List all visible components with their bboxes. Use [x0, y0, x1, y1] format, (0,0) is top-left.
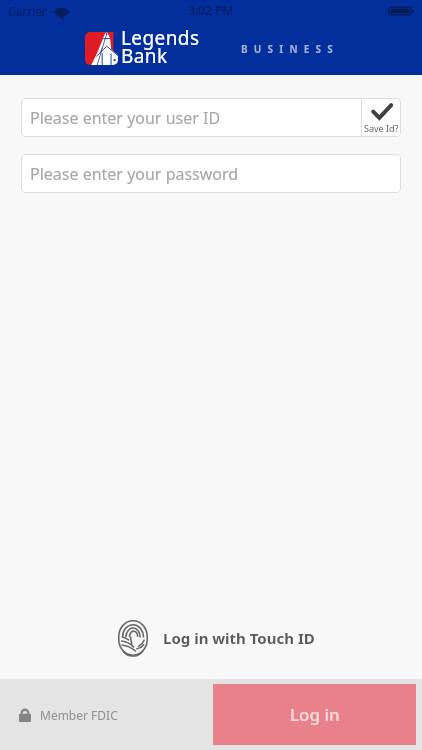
staticText: Member FDIC	[40, 707, 118, 723]
button[interactable]: Log in	[213, 684, 416, 745]
button[interactable]: Save Id	[362, 98, 401, 137]
staticText: Log in	[290, 703, 340, 726]
staticText: Please enter your password	[30, 163, 239, 185]
staticText: Save Id?	[364, 122, 399, 134]
staticText: Please enter your user ID	[30, 107, 221, 129]
button[interactable]: Log in with Touch ID	[5, 608, 422, 668]
staticText: Log in with Touch ID	[163, 628, 315, 648]
staticText: B U S I N E S S	[241, 42, 335, 56]
button[interactable]: Please enter your password	[21, 154, 401, 193]
staticText: 3:02 PM	[188, 2, 234, 18]
staticText: Bank	[121, 43, 168, 69]
button[interactable]: Please enter your user ID	[21, 98, 361, 137]
staticText: Carrier	[8, 3, 48, 19]
staticText: Legends	[121, 25, 200, 51]
